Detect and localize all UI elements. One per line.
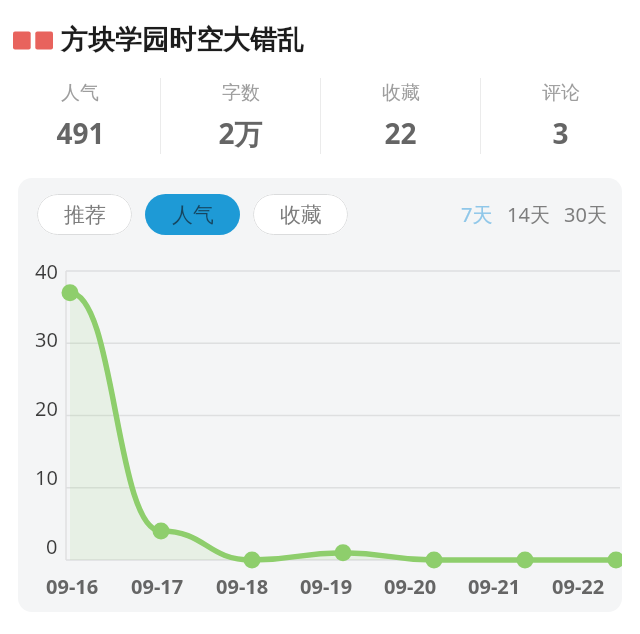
- staticText: 3: [552, 114, 569, 152]
- staticText: 0: [46, 533, 58, 560]
- staticText: 人气: [61, 81, 99, 105]
- button[interactable]: 推荐: [37, 194, 132, 235]
- button[interactable]: 字数: [161, 81, 320, 152]
- staticText: 2万: [218, 114, 263, 152]
- button[interactable]: 人气: [0, 81, 160, 152]
- staticText: 评论: [542, 81, 580, 105]
- staticText: 40: [35, 258, 58, 285]
- staticText: 方块学园时空大错乱: [61, 23, 304, 57]
- staticText: 20: [35, 395, 58, 422]
- staticText: 30: [35, 326, 58, 353]
- staticText: 7天: [461, 201, 493, 228]
- other: Book: [13, 26, 53, 54]
- button[interactable]: 30天: [564, 197, 607, 231]
- staticText: 22: [384, 114, 417, 152]
- button[interactable]: 评论: [481, 81, 640, 152]
- staticText: 30天: [564, 201, 607, 228]
- button[interactable]: 人气: [145, 194, 240, 235]
- staticText: 收藏: [382, 81, 420, 105]
- staticText: 人气: [172, 202, 214, 228]
- staticText: 09-22: [552, 573, 605, 600]
- staticText: 09-18: [216, 573, 269, 600]
- staticText: 字数: [222, 81, 260, 105]
- staticText: 10: [35, 464, 58, 491]
- staticText: 14天: [507, 201, 550, 228]
- button[interactable]: 14天: [507, 197, 550, 231]
- button[interactable]: 7天: [461, 197, 493, 231]
- button[interactable]: 收藏: [321, 81, 480, 152]
- staticText: 491: [56, 114, 105, 152]
- staticText: 09-20: [384, 573, 437, 600]
- staticText: 09-17: [131, 573, 184, 600]
- staticText: 09-19: [300, 573, 353, 600]
- staticText: 收藏: [280, 202, 322, 228]
- button[interactable]: 收藏: [253, 194, 348, 235]
- button[interactable]: Book: [13, 20, 640, 60]
- staticText: 09-16: [46, 573, 99, 600]
- staticText: 推荐: [64, 202, 106, 228]
- staticText: 09-21: [468, 573, 521, 600]
